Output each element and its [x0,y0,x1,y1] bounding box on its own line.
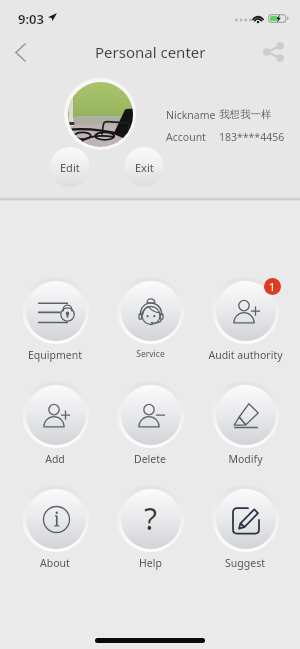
staticText: Exit [135,160,154,175]
button[interactable]: 1 [200,277,290,367]
button[interactable]: Edit [50,147,90,187]
staticText: Add [45,452,65,466]
staticText: ? [144,498,158,539]
staticText: Nickname [166,108,216,122]
button[interactable]: Add [10,381,100,471]
button[interactable]: Share [253,32,293,72]
staticText: Service [136,348,165,360]
button[interactable]: Back [0,32,40,72]
staticText: Equipment [28,348,82,362]
staticText: About [40,556,70,570]
staticText: Help [139,556,162,570]
staticText: Modify [228,452,263,466]
staticText: 我想我一样 [219,108,272,121]
staticText: Personal center [95,42,206,62]
button[interactable]: About [10,485,100,575]
staticText: Delete [134,452,166,466]
button[interactable]: ? [105,485,195,575]
staticText: Edit [60,160,80,175]
button[interactable]: Equipment [10,277,100,367]
button[interactable]: Service [105,277,195,367]
staticText: 1 [269,279,276,294]
button[interactable]: Modify [200,381,290,471]
staticText: Suggest [225,556,265,570]
button[interactable]: Suggest [200,485,290,575]
staticText: 183****4456 [219,130,285,144]
staticText: Audit authority [208,348,283,362]
button[interactable]: Delete [105,381,195,471]
staticText: Account [166,130,206,144]
staticText: 9:03 [18,10,44,28]
button[interactable]: Exit [124,147,164,187]
